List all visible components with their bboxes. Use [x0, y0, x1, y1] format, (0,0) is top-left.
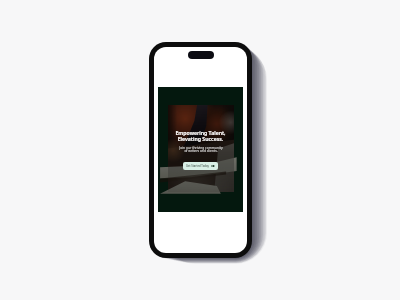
other: Get Started Today [211, 164, 215, 168]
button[interactable]: Get Started Today [183, 162, 218, 170]
staticText: Get Started Today [186, 164, 209, 168]
staticText: Empowering Talent, Elevating Success. [175, 129, 226, 142]
staticText: Join our thriving community of writers a… [179, 145, 223, 153]
